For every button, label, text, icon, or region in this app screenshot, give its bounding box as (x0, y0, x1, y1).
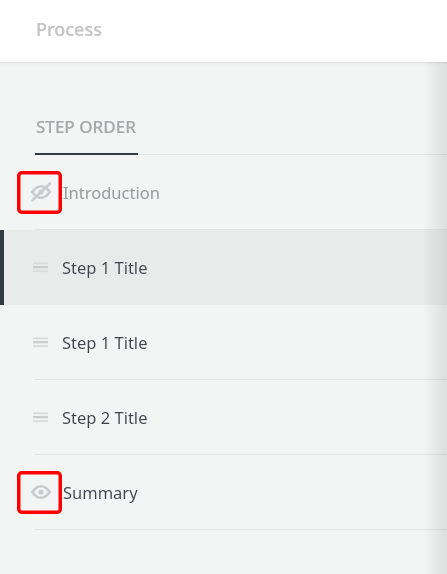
button[interactable]: Show step (0, 455, 447, 530)
button[interactable]: Hide step (0, 155, 447, 230)
button[interactable]: Step 2 Title (0, 380, 447, 455)
button[interactable]: Step 1 Title (0, 305, 447, 380)
staticText: Summary (63, 481, 138, 503)
staticText: Process (36, 17, 102, 42)
button[interactable]: Step 1 Title (0, 230, 447, 305)
staticText: Step 1 Title (62, 331, 148, 353)
button[interactable]: STEP ORDER (35, 62, 138, 155)
staticText: Introduction (63, 181, 160, 203)
button[interactable]: Hide step (17, 171, 62, 214)
button[interactable]: Show step (17, 471, 62, 514)
staticText: STEP ORDER (36, 115, 136, 138)
staticText: Step 2 Title (62, 406, 148, 428)
staticText: Step 1 Title (62, 256, 148, 278)
